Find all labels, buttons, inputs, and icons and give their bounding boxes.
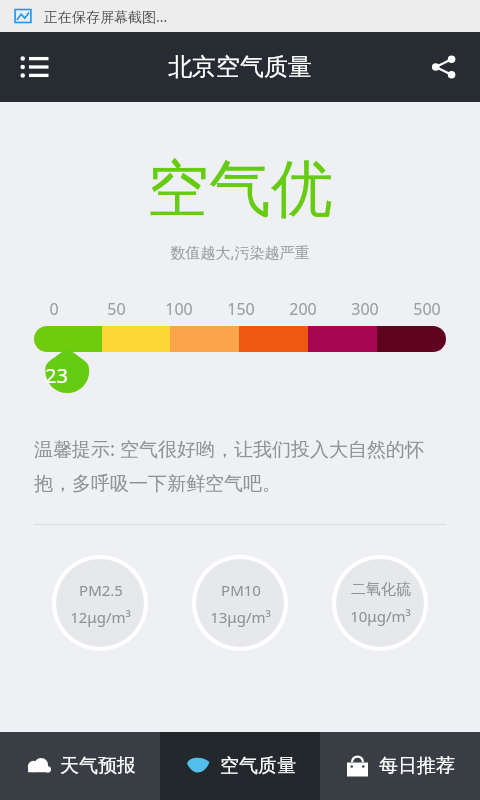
staticText: 空气优 bbox=[0, 150, 480, 228]
staticText: 二氧化硫 bbox=[351, 580, 411, 599]
staticText: 每日推荐 bbox=[379, 754, 455, 778]
staticText: 天气预报 bbox=[60, 754, 136, 778]
staticText: PM10 bbox=[221, 580, 261, 600]
staticText: 空气质量 bbox=[220, 754, 296, 778]
staticText: 150 bbox=[227, 298, 255, 320]
staticText: 200 bbox=[289, 298, 317, 320]
button[interactable]: 空气质量 bbox=[160, 732, 320, 800]
staticText: 23 bbox=[45, 362, 68, 389]
staticText: 50 bbox=[107, 298, 126, 320]
staticText: 300 bbox=[351, 298, 379, 320]
button[interactable]: PM2.5 bbox=[56, 559, 144, 647]
staticText: 正在保存屏幕截图... bbox=[44, 7, 168, 26]
staticText: 500 bbox=[413, 298, 441, 320]
staticText: 温馨提示: 空气很好哟，让我们投入大自然的怀抱，多呼吸一下新鲜空气吧。 bbox=[34, 436, 446, 496]
staticText: 100 bbox=[165, 298, 193, 320]
staticText: 10μg/m³ bbox=[350, 606, 411, 626]
button[interactable]: 天气预报 bbox=[0, 732, 160, 800]
staticText: 12μg/m³ bbox=[70, 607, 131, 627]
staticText: PM2.5 bbox=[79, 580, 123, 600]
staticText: 数值越大,污染越严重 bbox=[0, 242, 480, 262]
button[interactable]: 二氧化硫 bbox=[336, 559, 424, 647]
staticText: 北京空气质量 bbox=[168, 52, 312, 82]
button[interactable]: 每日推荐 bbox=[320, 732, 480, 800]
button[interactable]: PM10 bbox=[196, 559, 284, 647]
staticText: 0 bbox=[49, 298, 59, 320]
button[interactable]: Menu bbox=[8, 40, 62, 94]
staticText: 13μg/m³ bbox=[210, 607, 271, 627]
button[interactable]: Share bbox=[416, 40, 470, 94]
